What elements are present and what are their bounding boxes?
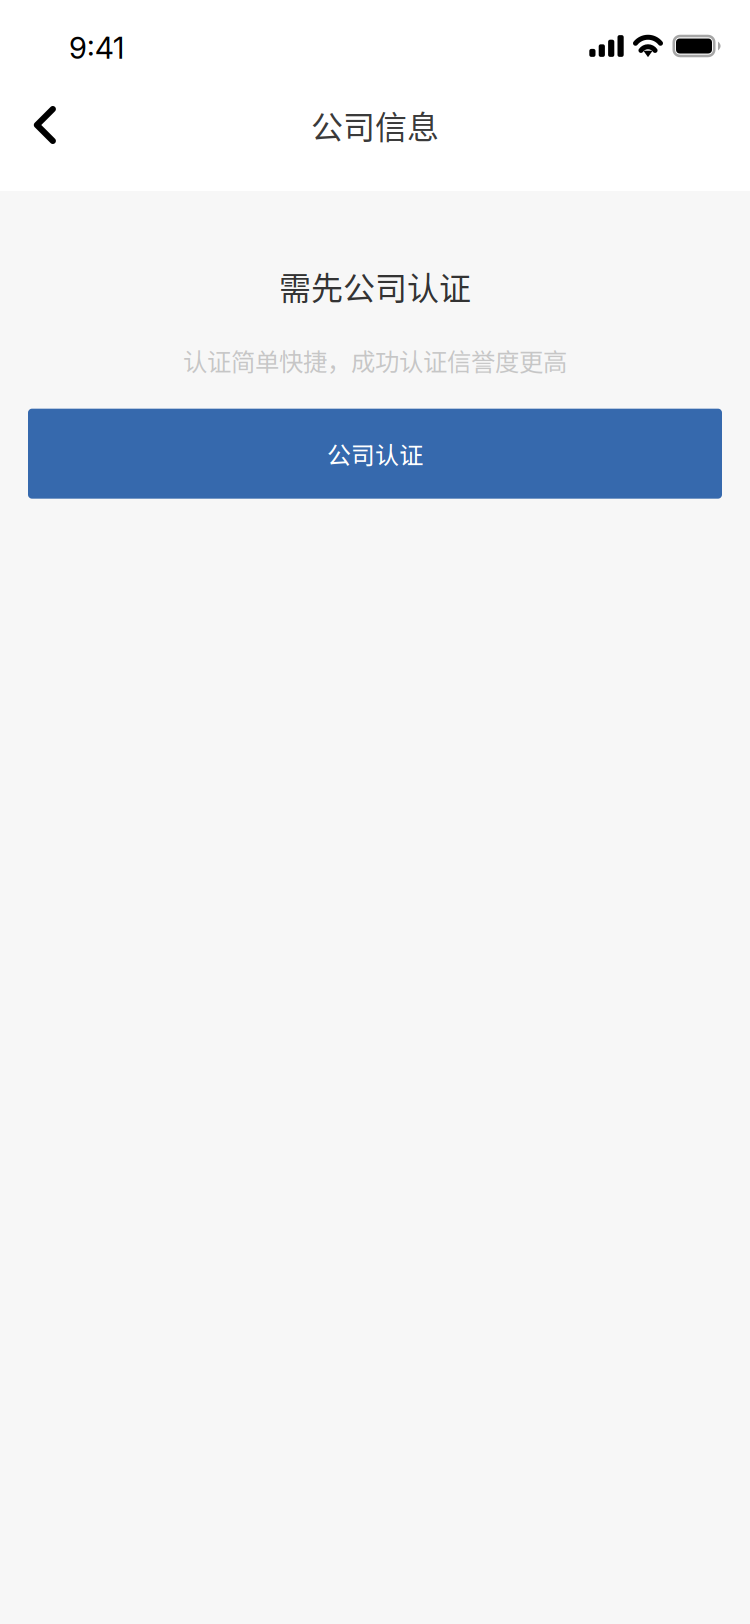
- staticText: 公司认证: [327, 436, 423, 471]
- button[interactable]: 公司认证: [28, 409, 722, 499]
- staticText: 公司信息: [311, 102, 439, 148]
- staticText: 认证简单快捷，成功认证信誉度更高: [183, 342, 567, 378]
- staticText: 9:41: [69, 30, 124, 66]
- staticText: 需先公司认证: [279, 263, 471, 309]
- button[interactable]: Back: [0, 88, 90, 162]
